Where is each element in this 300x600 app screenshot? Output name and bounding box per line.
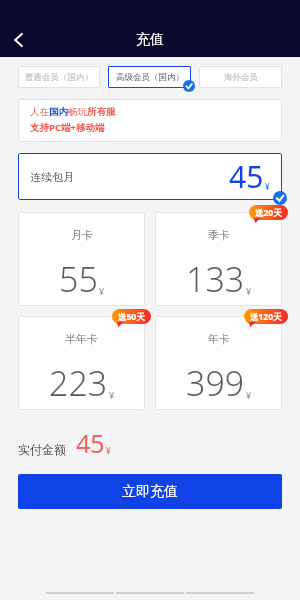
- staticText: 送120天: [250, 311, 282, 323]
- button[interactable]: 海外会员: [199, 66, 282, 88]
- staticText: 国内: [49, 106, 68, 118]
- staticText: ¥: [109, 389, 115, 401]
- staticText: ¥: [99, 285, 105, 297]
- staticText: 55: [59, 256, 98, 302]
- button[interactable]: Back: [0, 22, 38, 57]
- staticText: 实付金额: [18, 442, 66, 457]
- staticText: ¥: [106, 445, 111, 456]
- staticText: 人在: [30, 106, 49, 118]
- button[interactable]: 连续包月: [18, 153, 282, 200]
- button[interactable]: 月卡: [18, 212, 145, 306]
- staticText: ¥: [246, 285, 252, 297]
- staticText: 133: [186, 256, 245, 302]
- button[interactable]: 普通会员（国内）: [18, 66, 100, 88]
- staticText: 充值: [136, 31, 164, 49]
- staticText: 立即充值: [122, 483, 178, 501]
- button[interactable]: 高级会员（国内）: [108, 66, 191, 88]
- staticText: 所有服: [87, 106, 116, 118]
- staticText: ¥: [246, 389, 252, 401]
- button[interactable]: 半年卡: [18, 316, 145, 410]
- staticText: 连续包月: [30, 170, 74, 184]
- staticText: 45: [229, 156, 264, 197]
- staticText: 季卡: [208, 228, 230, 242]
- staticText: 45: [76, 426, 105, 460]
- staticText: 普通会员（国内）: [25, 72, 93, 83]
- staticText: 月卡: [71, 228, 93, 242]
- staticText: 年卡: [208, 332, 230, 346]
- staticText: 海外会员: [224, 72, 258, 83]
- staticText: 畅玩: [68, 106, 87, 118]
- staticText: ¥: [265, 181, 270, 192]
- staticText: 半年卡: [65, 332, 98, 346]
- staticText: 送50天: [118, 311, 145, 323]
- staticText: 399: [186, 360, 245, 406]
- staticText: 223: [49, 360, 108, 406]
- button[interactable]: 立即充值: [18, 474, 282, 509]
- staticText: 送20天: [255, 207, 282, 219]
- staticText: 支持PC端+移动端: [30, 121, 105, 134]
- button[interactable]: 年卡: [155, 316, 282, 410]
- button[interactable]: 季卡: [155, 212, 282, 306]
- staticText: 高级会员（国内）: [116, 72, 184, 83]
